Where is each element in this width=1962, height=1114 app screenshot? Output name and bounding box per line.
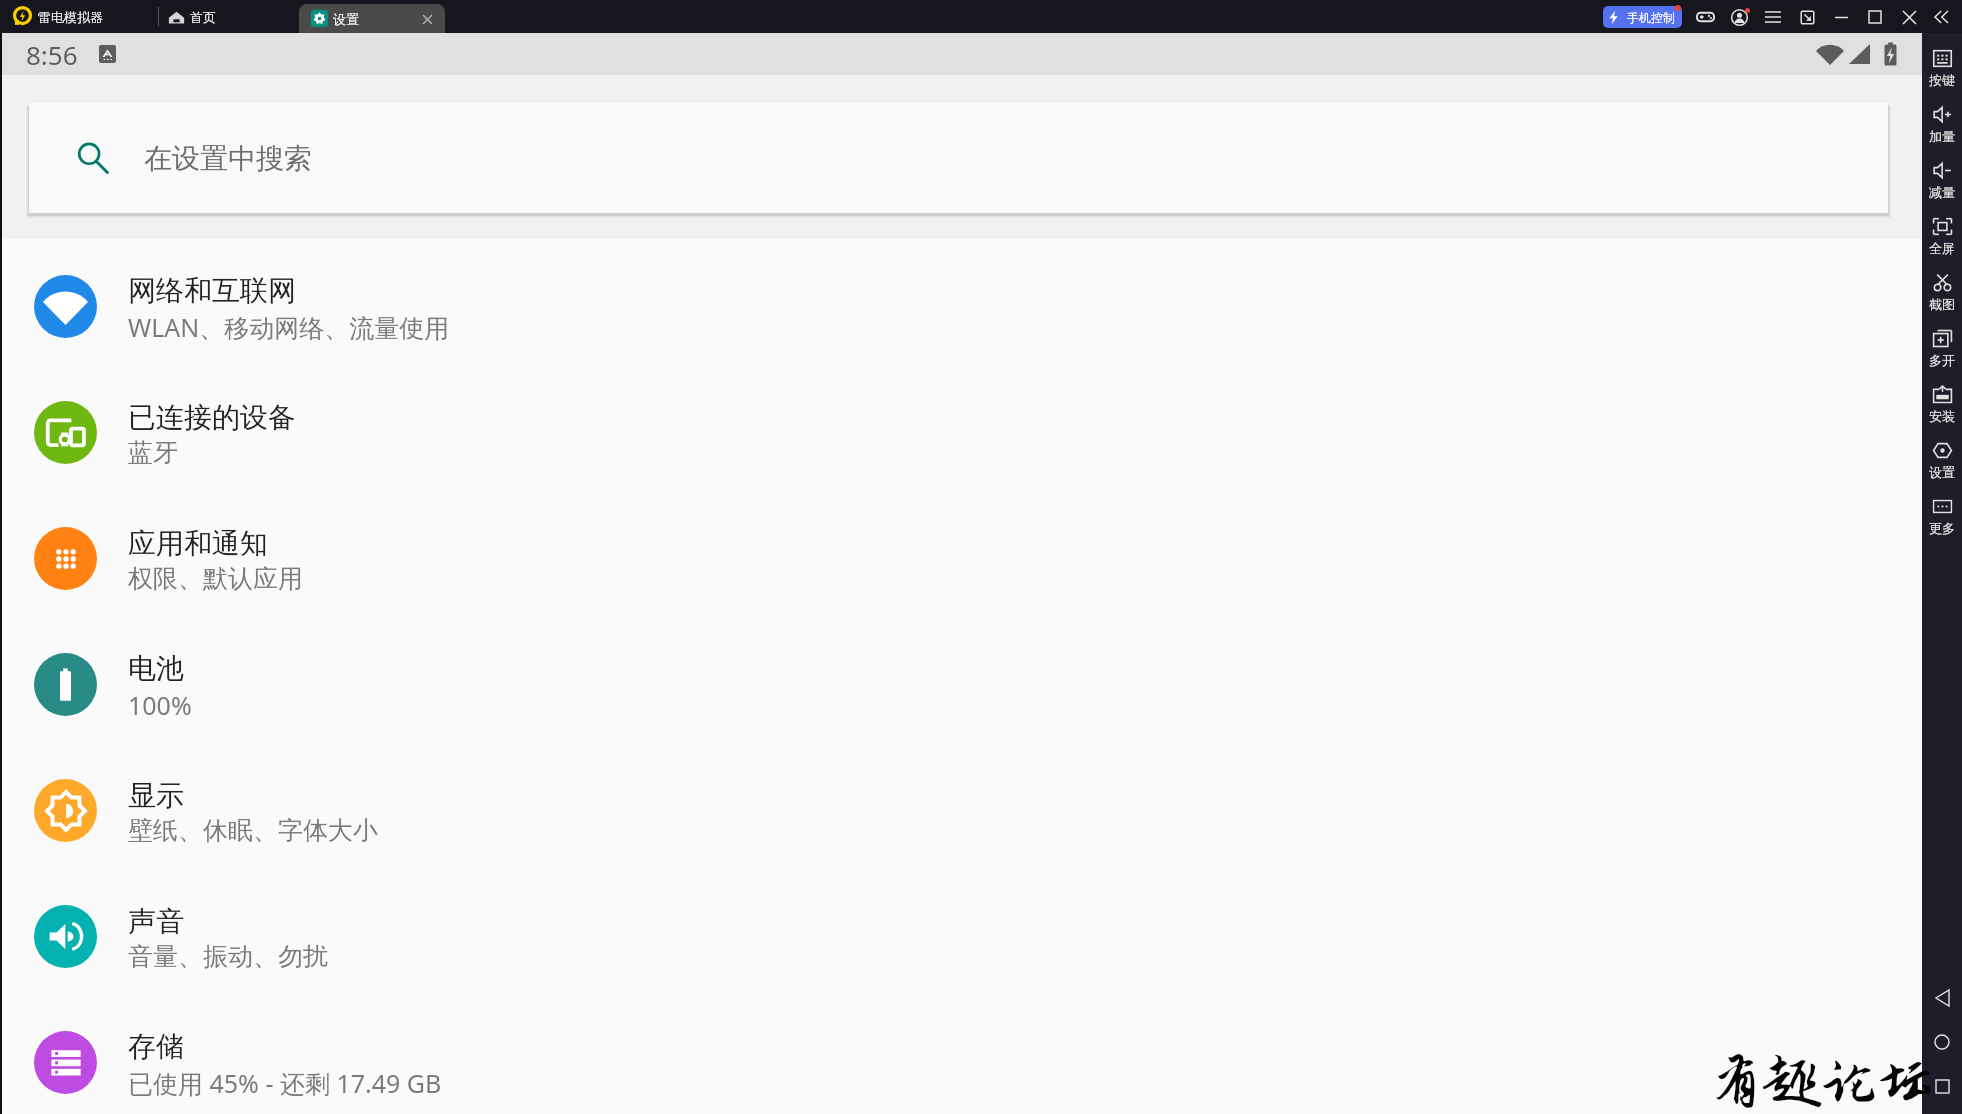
button[interactable]: Account — [1726, 4, 1752, 30]
staticText: 更多 — [1929, 520, 1955, 536]
button[interactable]: Recents — [1922, 1066, 1962, 1106]
button[interactable]: Maximize — [1862, 4, 1888, 30]
button[interactable]: 更多 — [1922, 481, 1962, 537]
button[interactable]: 声音 — [0, 873, 1922, 999]
staticText: 加量 — [1929, 128, 1955, 144]
staticText: 手机控制 — [1627, 10, 1675, 25]
button[interactable]: Close — [1896, 4, 1922, 30]
staticText: 音量、振动、勿扰 — [128, 941, 328, 972]
button[interactable]: Gamepad — [1692, 4, 1718, 30]
button[interactable]: 安装 — [1922, 369, 1962, 425]
staticText: 存储 — [128, 1029, 184, 1064]
button[interactable]: 设置 — [1922, 425, 1962, 481]
staticText: 有趣论坛 — [1707, 1051, 1934, 1114]
button[interactable]: Menu — [1760, 4, 1786, 30]
button[interactable]: Minimize — [1828, 4, 1854, 30]
button[interactable]: Collapse — [1928, 4, 1954, 30]
button[interactable]: 应用和通知 — [0, 495, 1922, 621]
button[interactable]: 手机控制 — [1603, 6, 1682, 28]
button[interactable]: 截图 — [1922, 257, 1962, 313]
staticText: 100% — [128, 688, 192, 722]
staticText: 多开 — [1929, 352, 1955, 368]
button[interactable]: Resize — [1794, 4, 1820, 30]
button[interactable]: 减量 — [1922, 145, 1962, 201]
staticText: 电池 — [128, 651, 184, 686]
staticText: 首页 — [190, 9, 216, 25]
staticText: 蓝牙 — [128, 437, 178, 468]
staticText: 壁纸、休眠、字体大小 — [128, 815, 378, 846]
staticText: 权限、默认应用 — [128, 563, 303, 594]
button[interactable]: 全屏 — [1922, 201, 1962, 257]
staticText: 全屏 — [1929, 240, 1955, 256]
button[interactable]: 显示 — [0, 747, 1922, 873]
button[interactable]: 已连接的设备 — [0, 369, 1922, 495]
button[interactable]: 加量 — [1922, 89, 1962, 145]
staticText: 已使用 45% - 还剩 17.49 GB — [128, 1066, 442, 1100]
button[interactable]: 多开 — [1922, 313, 1962, 369]
button[interactable]: 电池 — [0, 621, 1922, 747]
staticText: 已连接的设备 — [128, 400, 296, 435]
staticText: 设置 — [1929, 464, 1955, 480]
button[interactable]: 网络和互联网 — [0, 243, 1922, 369]
staticText: 显示 — [128, 778, 184, 813]
staticText: 安装 — [1929, 408, 1955, 424]
staticText: 网络和互联网 — [128, 273, 296, 308]
button[interactable]: 首页 — [164, 9, 220, 25]
staticText: 应用和通知 — [128, 526, 268, 561]
button[interactable]: 在设置中搜索 — [29, 103, 1888, 213]
button[interactable]: 存储 — [0, 999, 1922, 1114]
button[interactable]: Close tab — [417, 9, 437, 29]
staticText: 截图 — [1929, 296, 1955, 312]
staticText: 8:56 — [26, 37, 78, 72]
staticText: 在设置中搜索 — [144, 141, 312, 176]
staticText: WLAN、移动网络、流量使用 — [128, 310, 450, 344]
button[interactable]: 设置 — [299, 4, 445, 33]
staticText: 减量 — [1929, 184, 1955, 200]
staticText: 按键 — [1929, 72, 1955, 88]
button[interactable]: Home — [1922, 1022, 1962, 1062]
button[interactable]: Back — [1922, 978, 1962, 1018]
staticText: 雷电模拟器 — [38, 9, 103, 25]
staticText: 设置 — [333, 11, 359, 27]
button[interactable]: 按键 — [1922, 33, 1962, 89]
staticText: 声音 — [128, 904, 184, 939]
